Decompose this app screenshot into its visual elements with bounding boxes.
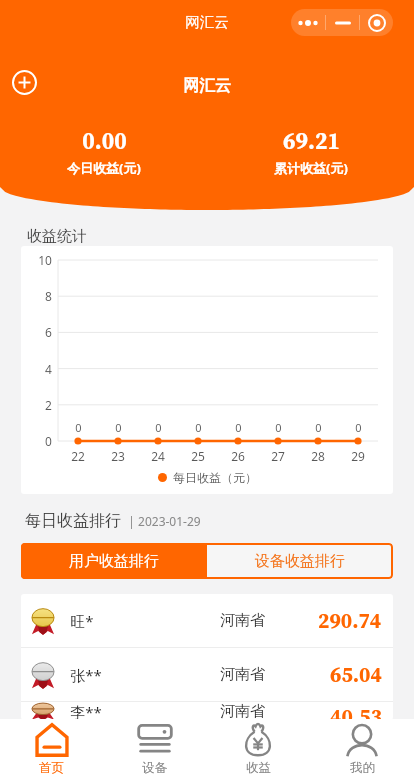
staticText: 收益统计 — [27, 227, 87, 246]
staticText: 河南省 — [220, 611, 265, 630]
staticText: 2 — [45, 397, 52, 413]
staticText: 6 — [45, 324, 52, 340]
staticText: 每日收益排行 — [25, 511, 121, 531]
staticText: 25 — [191, 448, 205, 464]
staticText: 0 — [45, 433, 52, 449]
staticText: 0 — [75, 420, 82, 435]
button[interactable]: Add — [11, 69, 38, 96]
staticText: 0 — [155, 420, 162, 435]
staticText: 今日收益(元) — [67, 159, 141, 177]
staticText: 用户收益排行 — [69, 552, 159, 571]
button[interactable]: 设备收益排行 — [207, 543, 393, 579]
staticText: 0 — [275, 420, 282, 435]
button[interactable]: More — [291, 9, 325, 36]
staticText: 40.53 — [330, 702, 382, 720]
staticText: | 2023-01-29 — [128, 513, 201, 529]
staticText: 河南省 — [220, 665, 265, 684]
staticText: 首页 — [39, 760, 64, 776]
staticText: 收益 — [246, 760, 271, 776]
staticText: 22 — [71, 448, 85, 464]
button[interactable]: Close — [360, 9, 393, 36]
staticText: 290.74 — [318, 606, 382, 635]
staticText: 29 — [351, 448, 365, 464]
staticText: 旺* — [70, 611, 94, 631]
staticText: 0 — [115, 420, 122, 435]
button[interactable]: 设备 — [103, 719, 206, 780]
staticText: 27 — [271, 448, 285, 464]
staticText: 设备收益排行 — [255, 552, 345, 571]
staticText: 网汇云 — [185, 13, 229, 31]
button[interactable]: 我的 — [310, 719, 414, 780]
button[interactable]: 用户收益排行 — [21, 543, 207, 579]
staticText: 李** — [70, 702, 102, 720]
staticText: 23 — [111, 448, 125, 464]
staticText: 累计收益(元) — [274, 159, 348, 177]
staticText: 每日收益（元） — [173, 470, 257, 485]
staticText: 4 — [45, 361, 52, 377]
button[interactable]: Minimize — [326, 9, 359, 36]
staticText: 0 — [315, 420, 322, 435]
staticText: 网汇云 — [183, 76, 231, 96]
staticText: 河南省 — [220, 702, 265, 720]
staticText: 69.21 — [283, 125, 340, 157]
staticText: 我的 — [350, 760, 375, 776]
staticText: 10 — [38, 252, 52, 268]
button[interactable]: 收益 — [206, 719, 310, 780]
staticText: 0 — [235, 420, 242, 435]
staticText: 28 — [311, 448, 325, 464]
staticText: 8 — [45, 288, 52, 304]
staticText: 0 — [355, 420, 362, 435]
staticText: 0 — [195, 420, 202, 435]
staticText: 设备 — [142, 760, 167, 776]
staticText: 65.04 — [330, 660, 382, 689]
staticText: 26 — [231, 448, 245, 464]
button[interactable]: 张** — [21, 648, 393, 701]
staticText: 张** — [70, 665, 102, 685]
staticText: 0.00 — [82, 125, 127, 157]
staticText: 24 — [151, 448, 165, 464]
button[interactable]: 首页 — [0, 719, 103, 780]
button[interactable]: 旺* — [21, 594, 393, 647]
button[interactable]: 李** — [21, 702, 393, 720]
